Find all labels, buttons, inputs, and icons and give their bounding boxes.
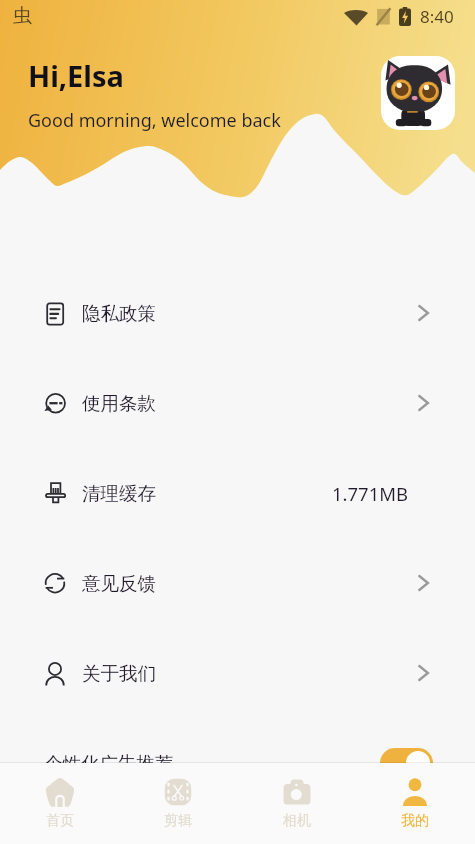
staticText: 剪辑: [164, 812, 192, 830]
staticText: 8:40: [420, 5, 454, 28]
button[interactable]: 清理缓存: [0, 448, 475, 538]
staticText: Good morning, welcome back: [28, 108, 281, 133]
staticText: 清理缓存: [82, 482, 156, 505]
button[interactable]: 隐私政策: [0, 268, 475, 358]
staticText: 隐私政策: [82, 302, 156, 325]
staticText: Hi,Elsa: [28, 56, 124, 95]
button[interactable]: 个性化广告推荐: [0, 718, 475, 808]
staticText: 1.771MB: [332, 481, 409, 506]
button[interactable]: Personalized ads toggle: [380, 748, 433, 778]
staticText: 我的: [401, 812, 429, 830]
staticText: 使用条款: [82, 392, 156, 415]
button[interactable]: 首页: [1, 763, 119, 830]
button[interactable]: 关于我们: [0, 628, 475, 718]
staticText: 首页: [46, 812, 74, 830]
button[interactable]: 我的: [356, 763, 474, 830]
staticText: 相机: [283, 812, 311, 830]
button[interactable]: 剪辑: [119, 763, 237, 830]
staticText: 意见反馈: [82, 572, 156, 595]
staticText: 虫: [13, 4, 32, 28]
staticText: 关于我们: [82, 662, 156, 685]
button[interactable]: 使用条款: [0, 358, 475, 448]
button[interactable]: Profile avatar: [381, 56, 455, 130]
button[interactable]: 相机: [238, 763, 356, 830]
staticText: 个性化广告推荐: [44, 752, 174, 775]
button[interactable]: 意见反馈: [0, 538, 475, 628]
